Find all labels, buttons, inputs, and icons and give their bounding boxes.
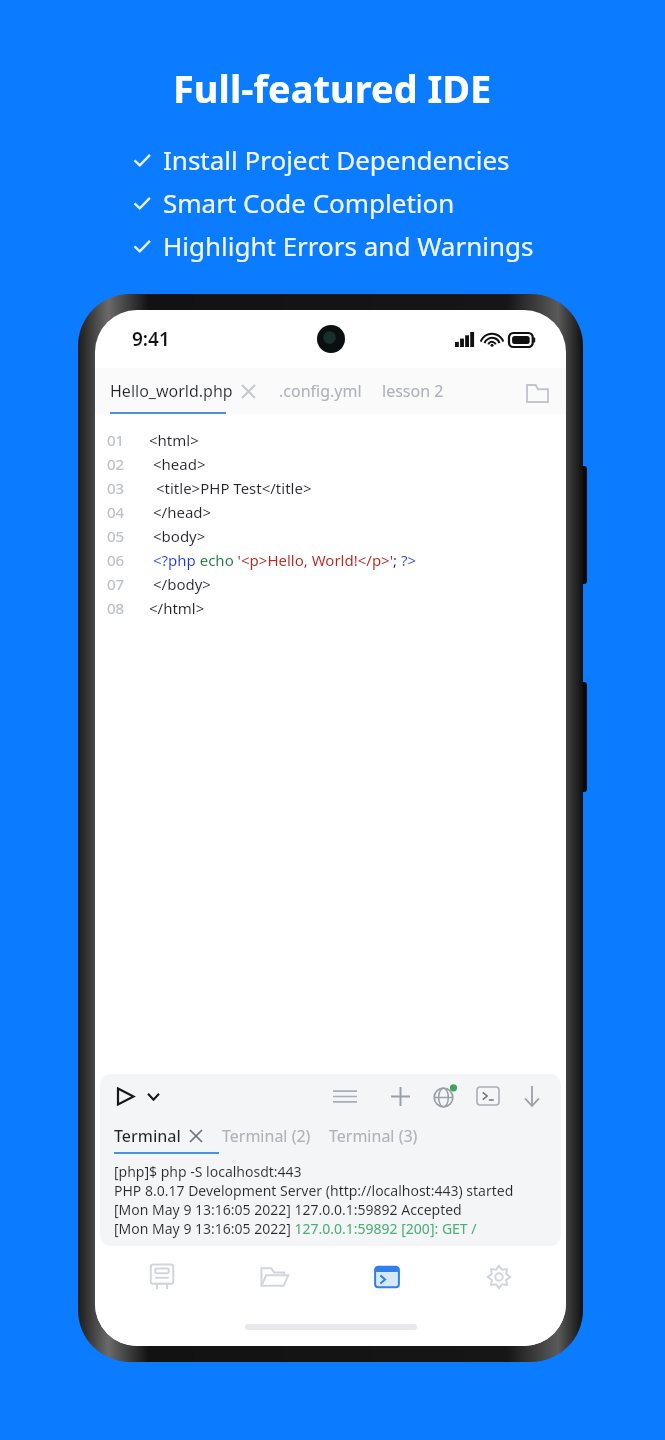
button[interactable]: Terminal console	[471, 1079, 505, 1113]
staticText: <head>	[153, 454, 206, 474]
staticText: [Mon May 9 13:16:05 2022] 127.0.0.1:5989…	[114, 1219, 477, 1238]
staticText: 01	[107, 430, 125, 450]
button[interactable]: Run	[108, 1079, 142, 1113]
staticText: <html>	[149, 430, 199, 450]
staticText: 03	[107, 478, 125, 498]
button[interactable]: New terminal	[383, 1079, 417, 1113]
staticText: 08	[107, 598, 125, 618]
staticText: Highlight Errors and Warnings	[163, 228, 534, 263]
staticText: 9:41	[132, 326, 170, 352]
button[interactable]: Terminal	[341, 1248, 433, 1306]
button[interactable]: lesson 2	[382, 380, 444, 402]
staticText: Install Project Dependencies	[163, 142, 510, 177]
staticText: </html>	[149, 598, 205, 618]
staticText: 05	[107, 526, 125, 546]
staticText: <title>PHP Test</title>	[156, 478, 312, 498]
button[interactable]: Scroll to end	[515, 1079, 549, 1113]
staticText: Full-featured IDE	[173, 62, 492, 114]
staticText: Hello_world.php	[110, 380, 233, 402]
button[interactable]: Web server	[427, 1079, 461, 1113]
staticText: </body>	[153, 574, 211, 594]
staticText: Terminal	[114, 1125, 181, 1147]
button[interactable]: Hello_world.php	[110, 380, 255, 402]
staticText: </head>	[153, 502, 212, 522]
staticText: 04	[107, 502, 125, 522]
button[interactable]: .config.yml	[279, 380, 362, 402]
staticText: <?php echo '<p>Hello, World!</p>'; ?>	[153, 550, 417, 570]
staticText: [php]$ php -S localhosdt:443	[114, 1162, 302, 1181]
staticText: PHP 8.0.17 Development Server (http://lo…	[114, 1181, 514, 1200]
button[interactable]: Editor	[116, 1248, 208, 1306]
staticText: <body>	[153, 526, 206, 546]
staticText: 06	[107, 550, 125, 570]
button[interactable]: Open folder	[522, 376, 552, 406]
staticText: 07	[107, 574, 125, 594]
staticText: 02	[107, 454, 125, 474]
staticText: [Mon May 9 13:16:05 2022] 127.0.0.1:5989…	[114, 1200, 462, 1219]
button[interactable]: Run configurations	[142, 1085, 164, 1107]
button[interactable]: Terminal (2)	[222, 1125, 311, 1147]
button[interactable]: Terminal (3)	[329, 1125, 418, 1147]
button[interactable]: Settings	[453, 1248, 545, 1306]
button[interactable]: Files	[228, 1248, 320, 1306]
button[interactable]: Menu	[327, 1078, 363, 1114]
button[interactable]: Terminal	[114, 1125, 202, 1147]
staticText: Smart Code Completion	[163, 185, 455, 220]
